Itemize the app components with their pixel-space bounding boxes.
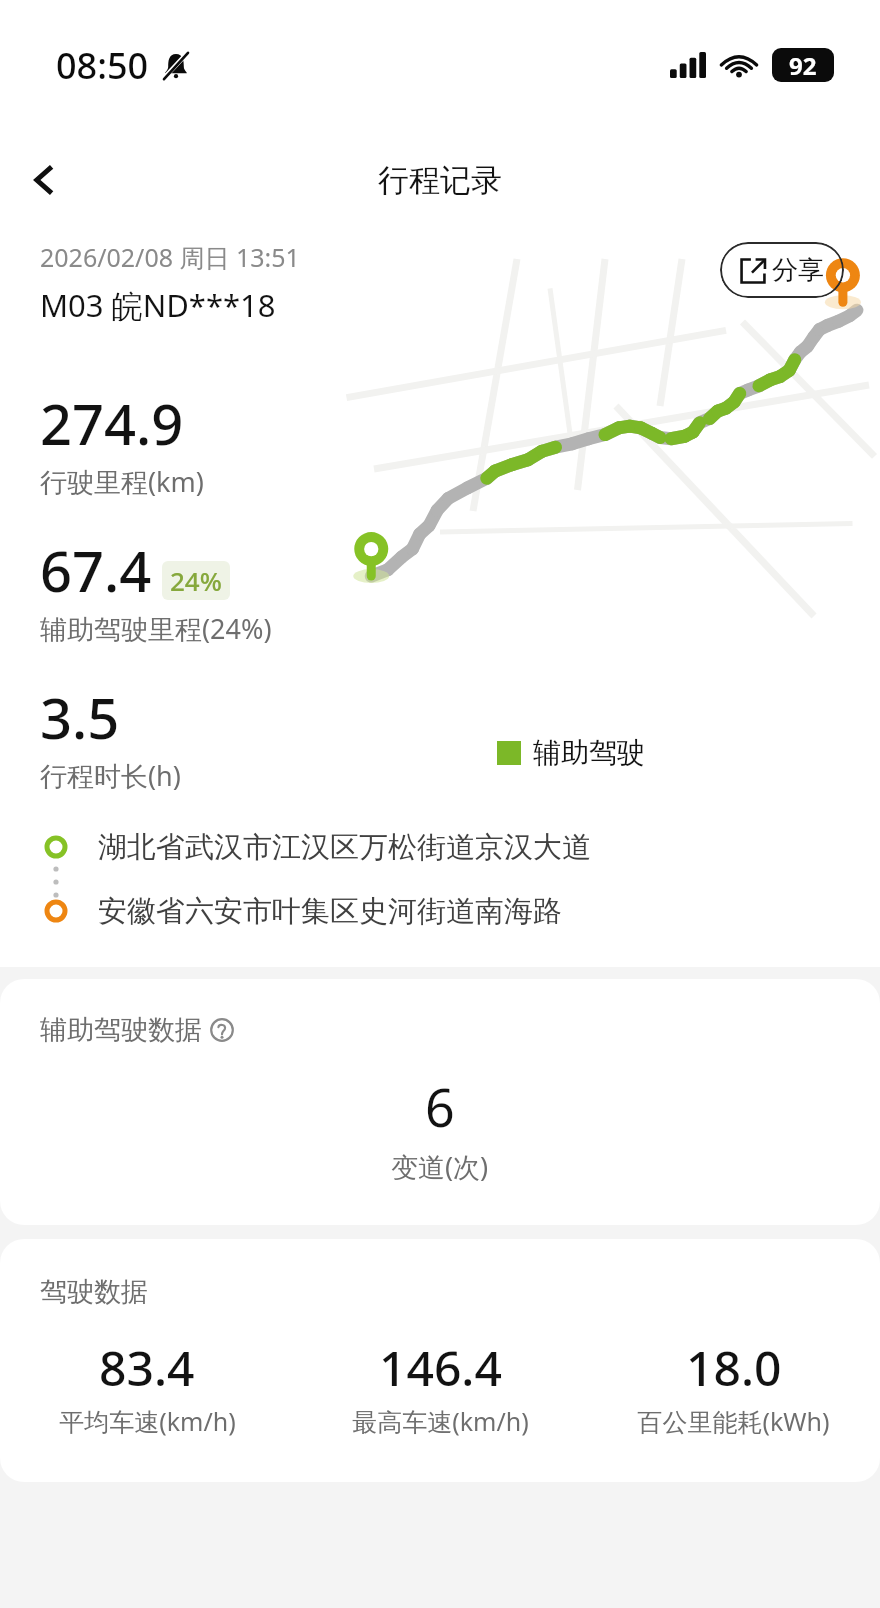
button[interactable]: 分享: [720, 242, 844, 298]
staticText: 92: [789, 49, 817, 82]
staticText: 274.9: [40, 385, 184, 461]
button[interactable]: Help: [207, 1015, 237, 1045]
staticText: 最高车速(km/h): [352, 1404, 529, 1438]
staticText: 3.5: [40, 679, 120, 755]
staticText: 67.4: [40, 532, 152, 608]
staticText: 辅助驾驶: [533, 735, 645, 770]
staticText: 辅助驾驶数据: [40, 1013, 202, 1047]
staticText: 百公里能耗(kWh): [637, 1404, 830, 1438]
staticText: 83.4: [99, 1335, 195, 1400]
staticText: 24%: [170, 563, 222, 598]
staticText: 6: [425, 1071, 455, 1142]
staticText: 行程记录: [378, 161, 502, 200]
staticText: 平均车速(km/h): [59, 1404, 236, 1438]
staticText: 湖北省武汉市江汉区万松街道京汉大道: [98, 829, 591, 866]
staticText: 变道(次): [391, 1148, 489, 1185]
staticText: 安徽省六安市叶集区史河街道南海路: [98, 893, 562, 930]
staticText: 分享: [772, 254, 824, 287]
staticText: 辅助驾驶里程(24%): [40, 610, 272, 647]
staticText: 08:50: [56, 41, 149, 90]
staticText: 18.0: [686, 1335, 782, 1400]
staticText: 2026/02/08 周日 13:51: [40, 240, 300, 274]
button[interactable]: Back: [8, 144, 80, 216]
staticText: 146.4: [379, 1335, 502, 1400]
staticText: 驾驶数据: [40, 1275, 148, 1309]
staticText: M03 皖ND***18: [40, 284, 276, 326]
staticText: 行程时长(h): [40, 757, 181, 794]
staticText: 行驶里程(km): [40, 463, 204, 500]
